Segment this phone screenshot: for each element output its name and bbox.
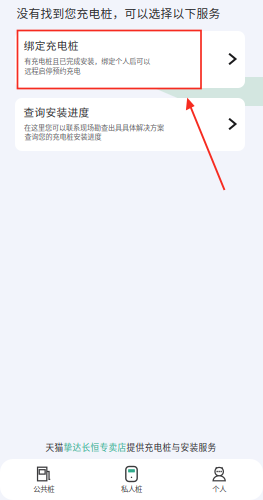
button[interactable]: 公共桩 xyxy=(0,459,88,500)
staticText: 提供充电桩与安装服务 xyxy=(126,441,216,453)
staticText: 个人 xyxy=(212,483,226,494)
staticText: 公共桩 xyxy=(33,483,54,494)
staticText: 没有找到您充电桩，可以选择以下服务 xyxy=(16,4,220,21)
staticText: 在这里您可以联系现场勘查出具具体解决方案 xyxy=(24,122,164,132)
staticText: 天猫 xyxy=(45,441,63,453)
button[interactable]: 绑定充电桩 xyxy=(15,31,245,88)
staticText: 有充电桩且已完成安装，绑定个人后可以 xyxy=(24,56,150,66)
staticText: 远程启停预约充电 xyxy=(24,65,80,75)
staticText: 私人桩 xyxy=(121,483,142,494)
staticText: 绑定充电桩 xyxy=(24,37,79,53)
button[interactable]: 查询安装进度 xyxy=(15,98,245,151)
button[interactable]: 私人桩 xyxy=(88,459,175,500)
staticText: 查询您的充电桩安装进度 xyxy=(24,131,101,141)
staticText: 查询安装进度 xyxy=(23,104,89,119)
staticText: 挚达长恒专卖店 xyxy=(63,441,126,453)
button[interactable]: 个人 xyxy=(175,459,263,500)
